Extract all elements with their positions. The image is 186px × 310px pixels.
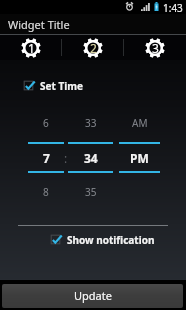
staticText: 35 xyxy=(85,185,97,199)
button[interactable]: Show notification xyxy=(50,233,155,247)
button[interactable]: Update xyxy=(2,284,183,308)
staticText: Set Time xyxy=(40,79,83,93)
staticText: 3 xyxy=(152,40,159,56)
button[interactable]: Widget 2 xyxy=(62,35,124,60)
staticText: Show notification xyxy=(67,233,155,247)
button[interactable]: Widget 1 xyxy=(0,35,62,60)
staticText: 34 xyxy=(84,150,98,166)
staticText: PM xyxy=(130,150,149,166)
button[interactable]: Set Time xyxy=(23,79,83,93)
staticText: 1:43 xyxy=(163,1,183,15)
staticText: 8 xyxy=(43,185,49,199)
other: Widget 1 xyxy=(20,37,42,59)
button[interactable]: Widget 3 xyxy=(124,35,186,60)
other: Widget 2 xyxy=(82,37,104,59)
staticText: AM xyxy=(132,116,148,130)
staticText: 6 xyxy=(43,116,49,130)
staticText: 7 xyxy=(43,150,50,166)
staticText: 33 xyxy=(85,116,97,130)
staticText: Widget Title xyxy=(8,17,70,32)
staticText: Update xyxy=(74,288,112,303)
staticText: 1 xyxy=(28,40,35,56)
other: Widget 3 xyxy=(144,37,166,59)
staticText: : xyxy=(64,150,68,166)
staticText: 2 xyxy=(90,40,97,56)
